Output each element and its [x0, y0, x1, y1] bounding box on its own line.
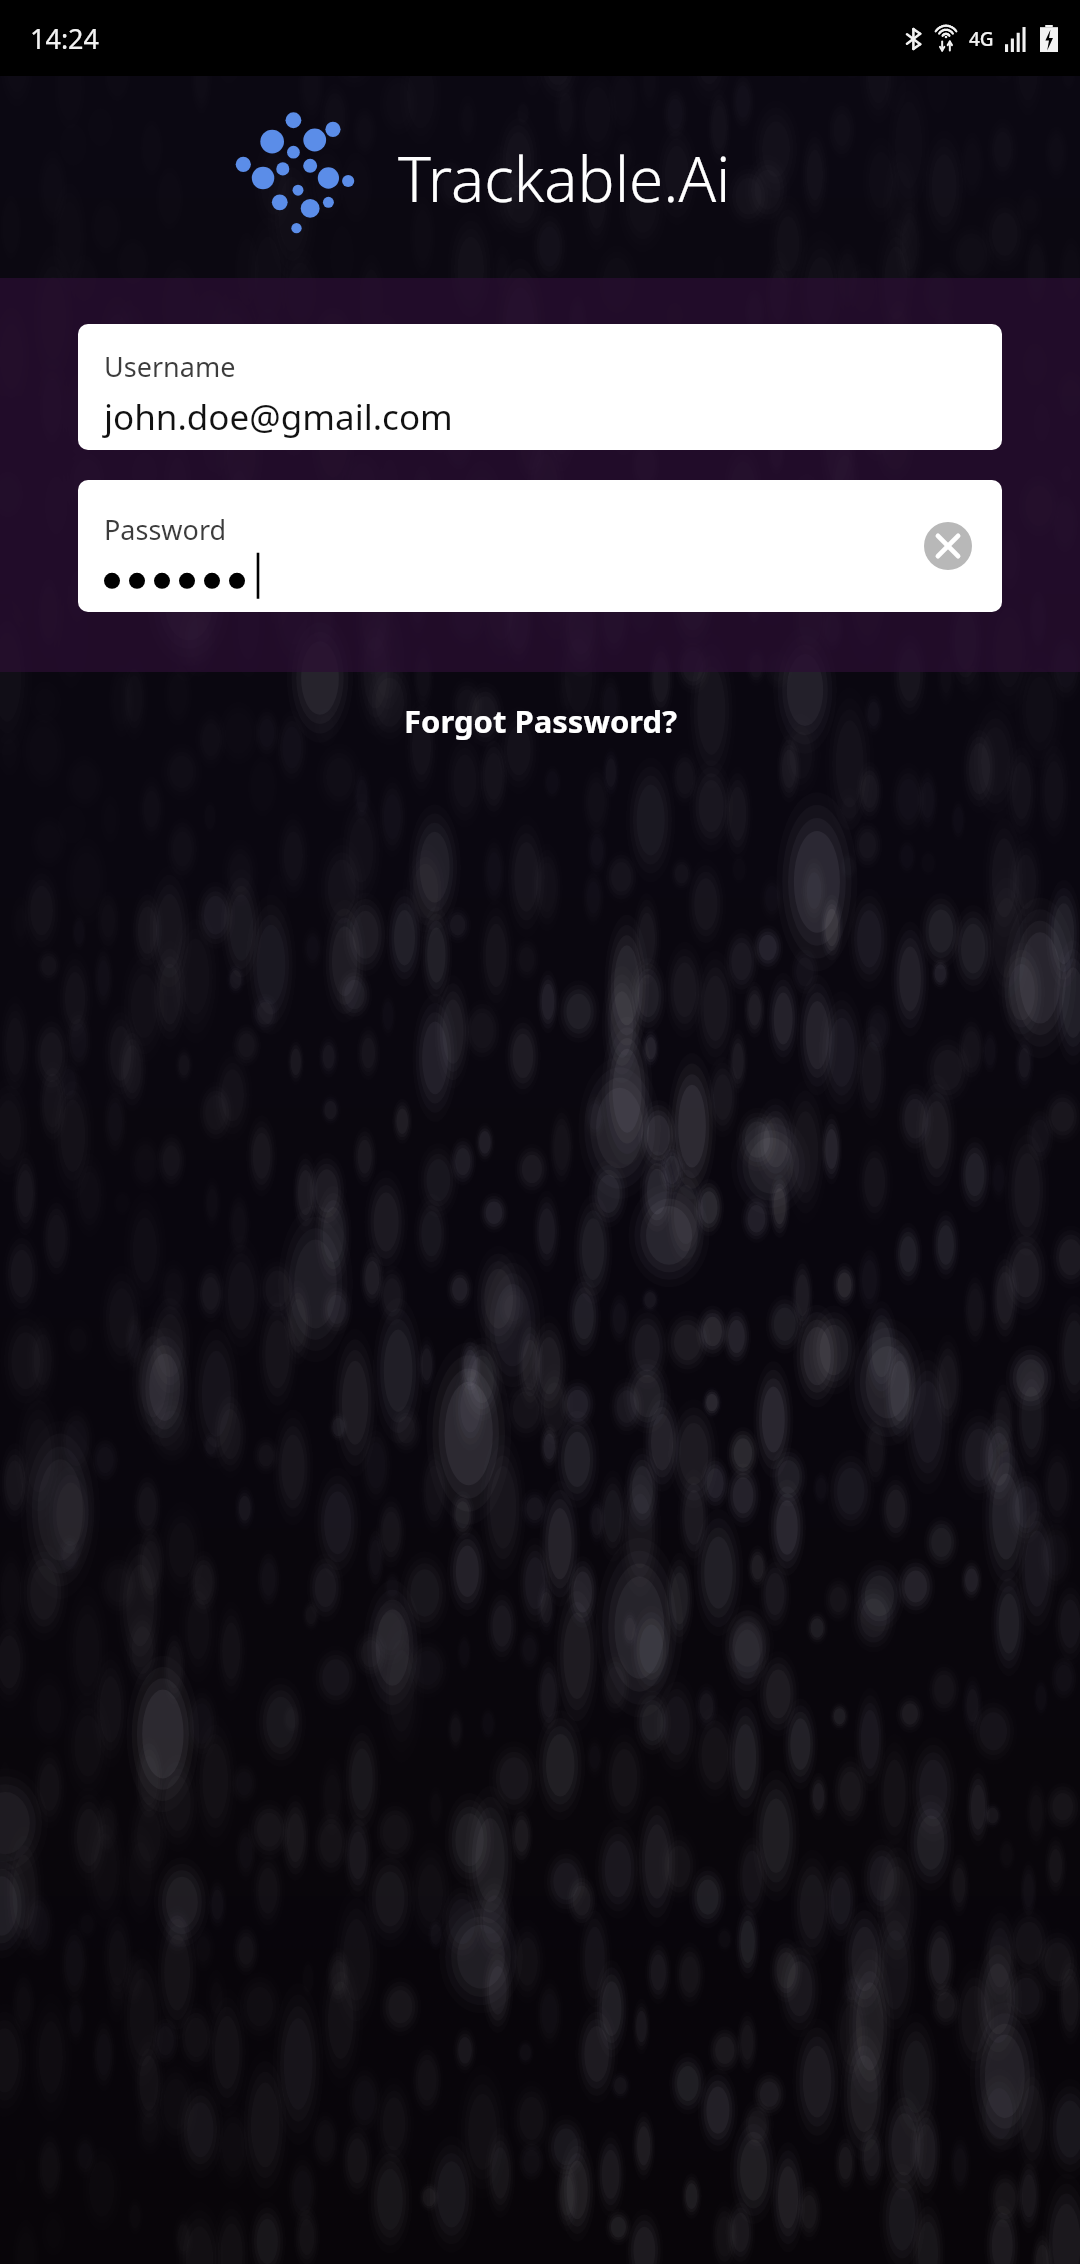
button[interactable]: Forgot Password?: [380, 690, 701, 752]
button[interactable]: Clear password: [920, 518, 976, 574]
button[interactable]: Password: [78, 480, 1002, 612]
staticText: Password: [104, 511, 227, 548]
staticText: 4G: [969, 26, 994, 52]
staticText: Username: [104, 348, 236, 385]
staticText: Trackable.Ai: [398, 136, 731, 220]
staticText: Forgot Password?: [404, 700, 677, 742]
button[interactable]: Username: [78, 324, 1002, 450]
staticText: john.doe@gmail.com: [104, 393, 453, 441]
staticText: 14:24: [30, 20, 100, 57]
